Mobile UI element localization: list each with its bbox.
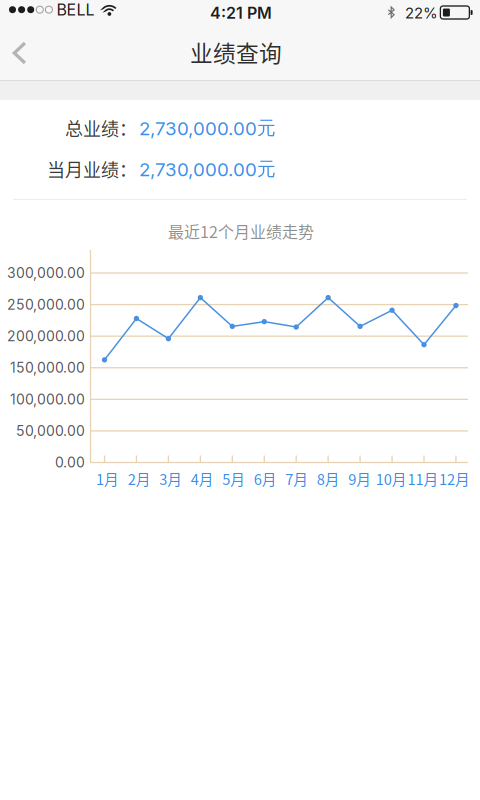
staticText: 150,000.00 xyxy=(10,359,85,376)
staticText: 0.00 xyxy=(55,454,85,471)
staticText: 9月 xyxy=(348,468,371,489)
staticText: 22% xyxy=(405,4,438,22)
staticText: 业绩查询 xyxy=(190,36,282,68)
staticText: 2,730,000.00元 xyxy=(139,116,276,140)
staticText: 4:21 PM xyxy=(210,3,272,23)
staticText: 8月 xyxy=(317,468,340,489)
staticText: 50,000.00 xyxy=(16,422,85,439)
staticText: 200,000.00 xyxy=(7,328,85,345)
staticText: 2月 xyxy=(128,468,151,489)
staticText: 2,730,000.00元 xyxy=(139,157,276,181)
staticText: 6月 xyxy=(254,468,277,489)
staticText: 总业绩： xyxy=(65,115,137,141)
staticText: 11月 xyxy=(407,468,438,489)
button[interactable]: Back xyxy=(0,26,46,80)
staticText: 300,000.00 xyxy=(7,264,85,281)
staticText: 10月 xyxy=(376,468,407,489)
staticText: 4月 xyxy=(191,468,214,489)
staticText: BELL xyxy=(56,0,94,19)
staticText: 当月业绩： xyxy=(47,156,137,182)
staticText: 5月 xyxy=(222,468,245,489)
staticText: 12月 xyxy=(439,468,470,489)
staticText: 最近12个月业绩走势 xyxy=(168,219,314,243)
staticText: 3月 xyxy=(159,468,182,489)
staticText: 250,000.00 xyxy=(7,296,85,313)
staticText: 1月 xyxy=(96,468,119,489)
staticText: 7月 xyxy=(285,468,308,489)
staticText: 100,000.00 xyxy=(10,391,85,408)
